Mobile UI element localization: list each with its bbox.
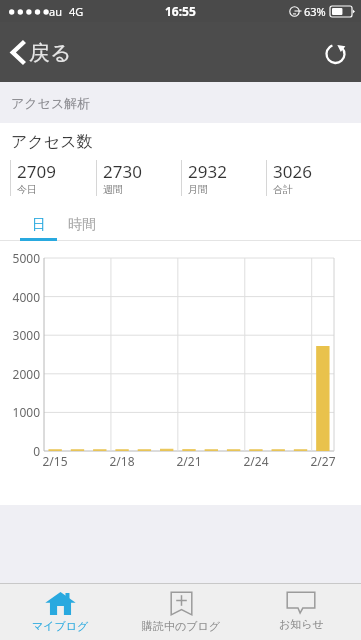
staticText: au: [49, 4, 62, 19]
staticText: 月間: [188, 183, 208, 196]
staticText: 63%: [304, 4, 326, 19]
staticText: 2/18: [105, 453, 139, 469]
staticText: アクセス解析: [11, 95, 91, 111]
staticText: 購読中のブログ: [142, 619, 221, 633]
staticText: 戻る: [29, 40, 72, 66]
staticText: 4000: [1, 289, 40, 305]
button[interactable]: Reload: [310, 27, 361, 78]
staticText: お知らせ: [279, 617, 324, 631]
staticText: マイブログ: [32, 619, 89, 633]
staticText: 日: [32, 216, 46, 234]
staticText: 時間: [68, 216, 96, 234]
button[interactable]: 購読中のブログ: [121, 584, 241, 640]
staticText: 2932: [188, 160, 227, 183]
button[interactable]: お知らせ: [241, 584, 361, 640]
staticText: 5000: [1, 250, 40, 266]
staticText: 4G: [69, 4, 84, 19]
staticText: 0: [1, 443, 40, 459]
button[interactable]: 戻る: [0, 29, 86, 76]
staticText: 3026: [273, 160, 312, 183]
button[interactable]: 日: [20, 211, 57, 238]
staticText: 3000: [1, 327, 40, 343]
staticText: 2/21: [172, 453, 206, 469]
staticText: 2730: [103, 160, 142, 183]
staticText: 2000: [1, 366, 40, 382]
staticText: 2709: [17, 160, 56, 183]
button[interactable]: 時間: [57, 211, 107, 238]
staticText: 週間: [103, 183, 123, 196]
staticText: 1000: [1, 404, 40, 420]
staticText: 2/24: [239, 453, 273, 469]
staticText: 今日: [17, 183, 37, 196]
staticText: 16:55: [165, 3, 196, 19]
staticText: 2/15: [38, 453, 72, 469]
staticText: 合計: [273, 183, 293, 196]
staticText: アクセス数: [11, 132, 93, 152]
staticText: 2/27: [306, 453, 340, 469]
button[interactable]: マイブログ: [0, 584, 121, 640]
